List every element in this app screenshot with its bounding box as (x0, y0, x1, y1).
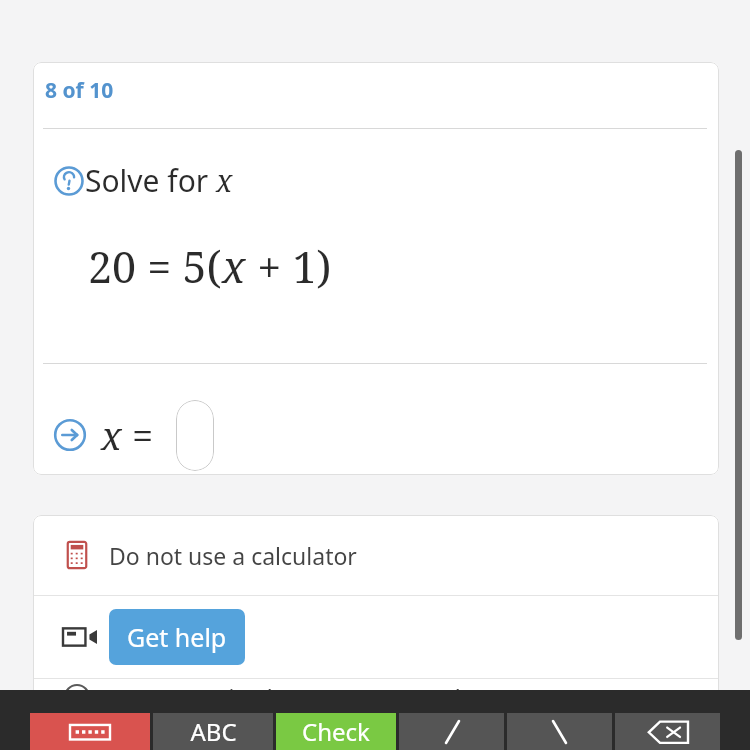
button[interactable]: Previous (399, 713, 504, 750)
button[interactable]: Submit answer (53, 418, 87, 452)
button[interactable]: Do not use a calculator (33, 515, 719, 595)
staticText: + 1) (246, 237, 332, 296)
staticText: Report a mistake to HegartyMaths (109, 682, 480, 713)
staticText: ABC (190, 715, 237, 748)
staticText: = (122, 409, 154, 461)
other: Video (63, 625, 97, 649)
staticText: 8 of 10 (45, 76, 114, 105)
staticText: x (216, 160, 233, 201)
staticText: Solve for (85, 160, 216, 201)
staticText: x (101, 409, 122, 461)
button[interactable]: Report a mistake to HegartyMaths (33, 679, 719, 715)
staticText: x (222, 237, 246, 296)
button[interactable]: Next (507, 713, 612, 750)
staticText: Get help (127, 620, 227, 654)
button[interactable]: Backspace (615, 713, 720, 750)
button[interactable]: Check (276, 713, 396, 750)
staticText: Check (302, 715, 370, 748)
staticText: Do not use a calculator (109, 540, 357, 571)
button[interactable]: Hide keyboard (30, 713, 150, 750)
button[interactable]: Get help (109, 609, 245, 665)
button[interactable]: ABC (153, 713, 273, 750)
other: Question info (53, 165, 85, 197)
button[interactable]: 8 of 10 (43, 72, 116, 109)
button[interactable]: Answer input (176, 400, 214, 471)
staticText: 20 = 5( (88, 237, 222, 296)
